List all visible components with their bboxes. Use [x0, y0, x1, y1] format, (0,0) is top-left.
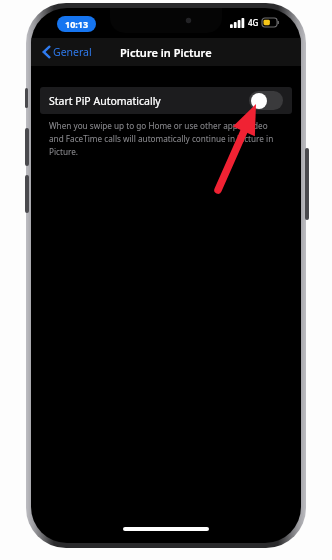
staticText: Picture.: [49, 146, 79, 157]
staticText: 4G: [248, 17, 259, 28]
staticText: 10:13: [65, 18, 89, 30]
staticText: Picture in Picture: [120, 45, 212, 60]
staticText: and FaceTime calls will automatically co…: [49, 133, 274, 144]
button[interactable]: General: [39, 42, 96, 62]
button[interactable]: Start PiP Automatically: [40, 87, 292, 114]
staticText: Start PiP Automatically: [49, 94, 161, 108]
staticText: General: [53, 45, 92, 59]
button[interactable]: Start PiP Automatically toggle: [249, 91, 283, 110]
staticText: When you swipe up to go Home or use othe…: [49, 120, 268, 131]
